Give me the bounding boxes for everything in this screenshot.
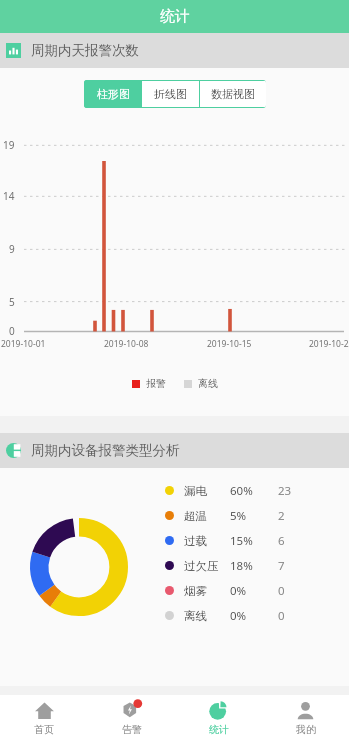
staticText: 折线图 — [154, 87, 187, 101]
staticText: 首页 — [34, 723, 54, 736]
button[interactable]: 过欠压 — [158, 553, 349, 578]
staticText: 7 — [278, 558, 285, 574]
staticText: 2019-10-01 — [1, 338, 46, 350]
staticText: 超温 — [184, 509, 207, 523]
button[interactable]: 我的 — [262, 695, 349, 741]
button[interactable]: 首页 — [0, 695, 88, 741]
button[interactable]: 过载 — [158, 528, 349, 553]
staticText: 漏电 — [184, 484, 207, 498]
staticText: 统计 — [209, 723, 229, 736]
staticText: 离线 — [198, 377, 218, 390]
staticText: 0 — [278, 608, 285, 624]
button[interactable]: 周期内天报警次数 — [0, 33, 349, 68]
staticText: 告警 — [122, 723, 142, 736]
button[interactable]: 告警 — [88, 695, 175, 741]
staticText: 0 — [9, 324, 15, 338]
staticText: 0 — [278, 583, 285, 599]
staticText: 14 — [3, 189, 15, 203]
staticText: 过载 — [184, 534, 207, 548]
staticText: 2019-10-2 — [309, 338, 349, 350]
staticText: 周期内设备报警日志 — [31, 713, 153, 730]
staticText: 我的 — [296, 723, 316, 736]
button[interactable]: 漏电 — [158, 478, 349, 503]
staticText: 周期内天报警次数 — [31, 42, 139, 59]
staticText: 2019-10-08 — [104, 338, 149, 350]
staticText: 0% — [230, 583, 247, 599]
staticText: 6 — [278, 533, 285, 549]
staticText: 报警 — [146, 377, 166, 390]
button[interactable]: 烟雾 — [158, 578, 349, 603]
button[interactable]: 周期内设备报警日志 — [0, 704, 349, 739]
staticText: 离线 — [184, 609, 207, 623]
staticText: 18% — [230, 558, 253, 574]
staticText: 9 — [9, 242, 15, 256]
staticText: 烟雾 — [184, 584, 207, 598]
staticText: 周期内设备报警类型分析 — [31, 442, 180, 459]
staticText: 2019-10-15 — [207, 338, 252, 350]
staticText: 5 — [9, 295, 15, 309]
staticText: 0% — [230, 608, 247, 624]
staticText: 柱形图 — [97, 87, 130, 101]
button[interactable]: 折线图 — [142, 81, 199, 107]
staticText: 19 — [3, 138, 15, 152]
staticText: 数据视图 — [211, 87, 255, 101]
staticText: 5% — [230, 508, 247, 524]
staticText: 统计 — [160, 7, 190, 26]
button[interactable]: 周期内设备报警类型分析 — [0, 433, 349, 468]
button[interactable]: 超温 — [158, 503, 349, 528]
staticText: 60% — [230, 483, 253, 499]
staticText: 2 — [278, 508, 285, 524]
staticText: 23 — [278, 483, 292, 499]
staticText: 15% — [230, 533, 253, 549]
button[interactable]: 柱形图 — [84, 80, 142, 108]
button[interactable]: 统计 — [175, 695, 262, 741]
button[interactable]: 离线 — [158, 603, 349, 628]
staticText: 过欠压 — [184, 559, 219, 573]
button[interactable]: 数据视图 — [200, 81, 266, 107]
